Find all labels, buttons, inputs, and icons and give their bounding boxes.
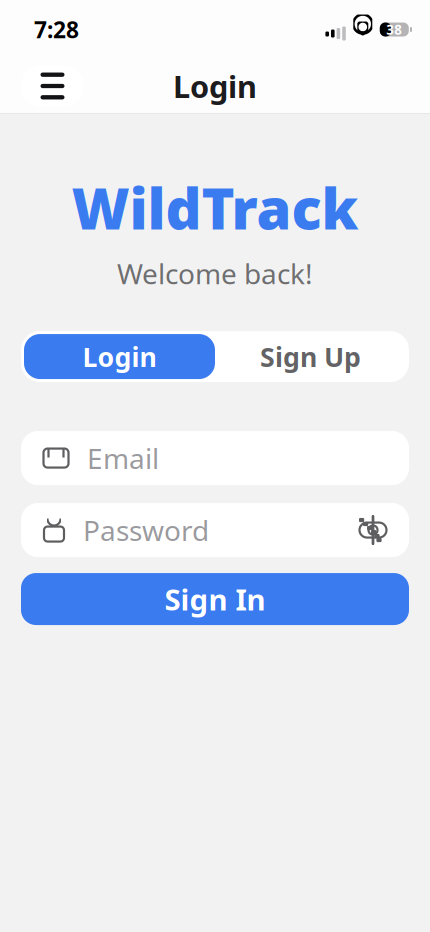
button[interactable]: Sign In xyxy=(21,573,409,625)
button[interactable]: Sign Up xyxy=(215,334,406,379)
button[interactable]: Login xyxy=(24,334,215,379)
staticText: WildTrack xyxy=(71,170,358,245)
staticText: Sign In xyxy=(164,580,265,619)
staticText: 38 xyxy=(386,21,402,38)
staticText: Sign Up xyxy=(260,339,361,374)
staticText: Password xyxy=(83,511,209,549)
button[interactable]: Password xyxy=(21,503,409,557)
staticText: Welcome back! xyxy=(117,255,313,292)
staticText: 7:28 xyxy=(34,14,79,44)
button[interactable]: Email xyxy=(21,431,409,485)
staticText: Login xyxy=(82,339,156,374)
staticText: Login xyxy=(173,66,257,106)
button[interactable]: Menu xyxy=(21,65,84,107)
staticText: Email xyxy=(87,439,159,477)
